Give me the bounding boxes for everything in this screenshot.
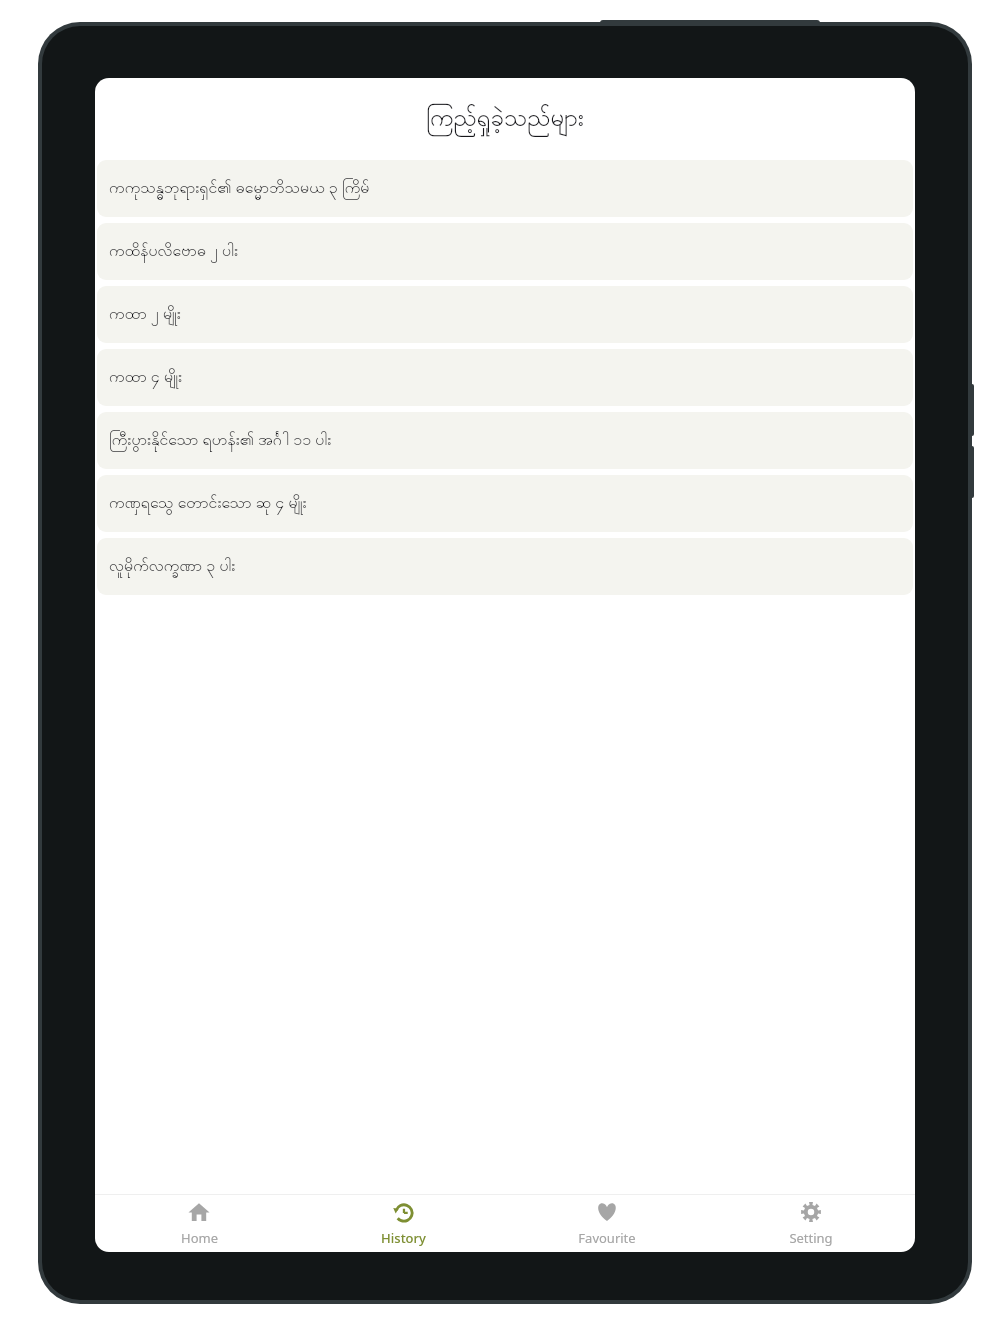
button[interactable]: ကထာ ၂ မျိုး (97, 286, 913, 343)
staticText: Home (181, 1229, 218, 1247)
button[interactable]: ကကုသန္ဓဘုရားရှင်၏ ဓမ္မောဘိသမယ ၃ ကြိမ် (97, 160, 913, 217)
button[interactable]: ကထာ ၄ မျိုး (97, 349, 913, 406)
button[interactable]: Favourite (507, 1194, 707, 1252)
staticText: Setting (789, 1229, 833, 1247)
staticText: ကကုသန္ဓဘုရားရှင်၏ ဓမ္မောဘိသမယ ၃ ကြိမ် (109, 176, 370, 201)
staticText: ကဏှရသွေ တောင်းသော ဆု ၄ မျိုး (109, 491, 307, 516)
staticText: လူမိုက်လက္ခဏာ ၃ ပါး (109, 554, 236, 579)
staticText: ကထာ ၂ မျိုး (109, 302, 181, 327)
staticText: History (381, 1229, 426, 1247)
staticText: ကထိန်ပလိဗောဓ ၂ ပါး (109, 239, 239, 264)
button[interactable]: Home (99, 1194, 299, 1252)
staticText: ကြီးပွားနိုင်သော ရဟန်း၏ အင်္ဂါ ၁၁ ပါး (109, 428, 332, 453)
button[interactable]: လူမိုက်လက္ခဏာ ၃ ပါး (97, 538, 913, 595)
staticText: ကထာ ၄ မျိုး (109, 365, 183, 390)
button[interactable]: ကြီးပွားနိုင်သော ရဟန်း၏ အင်္ဂါ ၁၁ ပါး (97, 412, 913, 469)
button[interactable]: ကဏှရသွေ တောင်းသော ဆု ၄ မျိုး (97, 475, 913, 532)
button[interactable]: ကထိန်ပလိဗောဓ ၂ ပါး (97, 223, 913, 280)
staticText: Favourite (578, 1229, 636, 1247)
staticText: ကြည့်ရှုခဲ့သည်များ (426, 102, 584, 137)
button[interactable]: Setting (711, 1194, 911, 1252)
button[interactable]: History (303, 1194, 503, 1252)
